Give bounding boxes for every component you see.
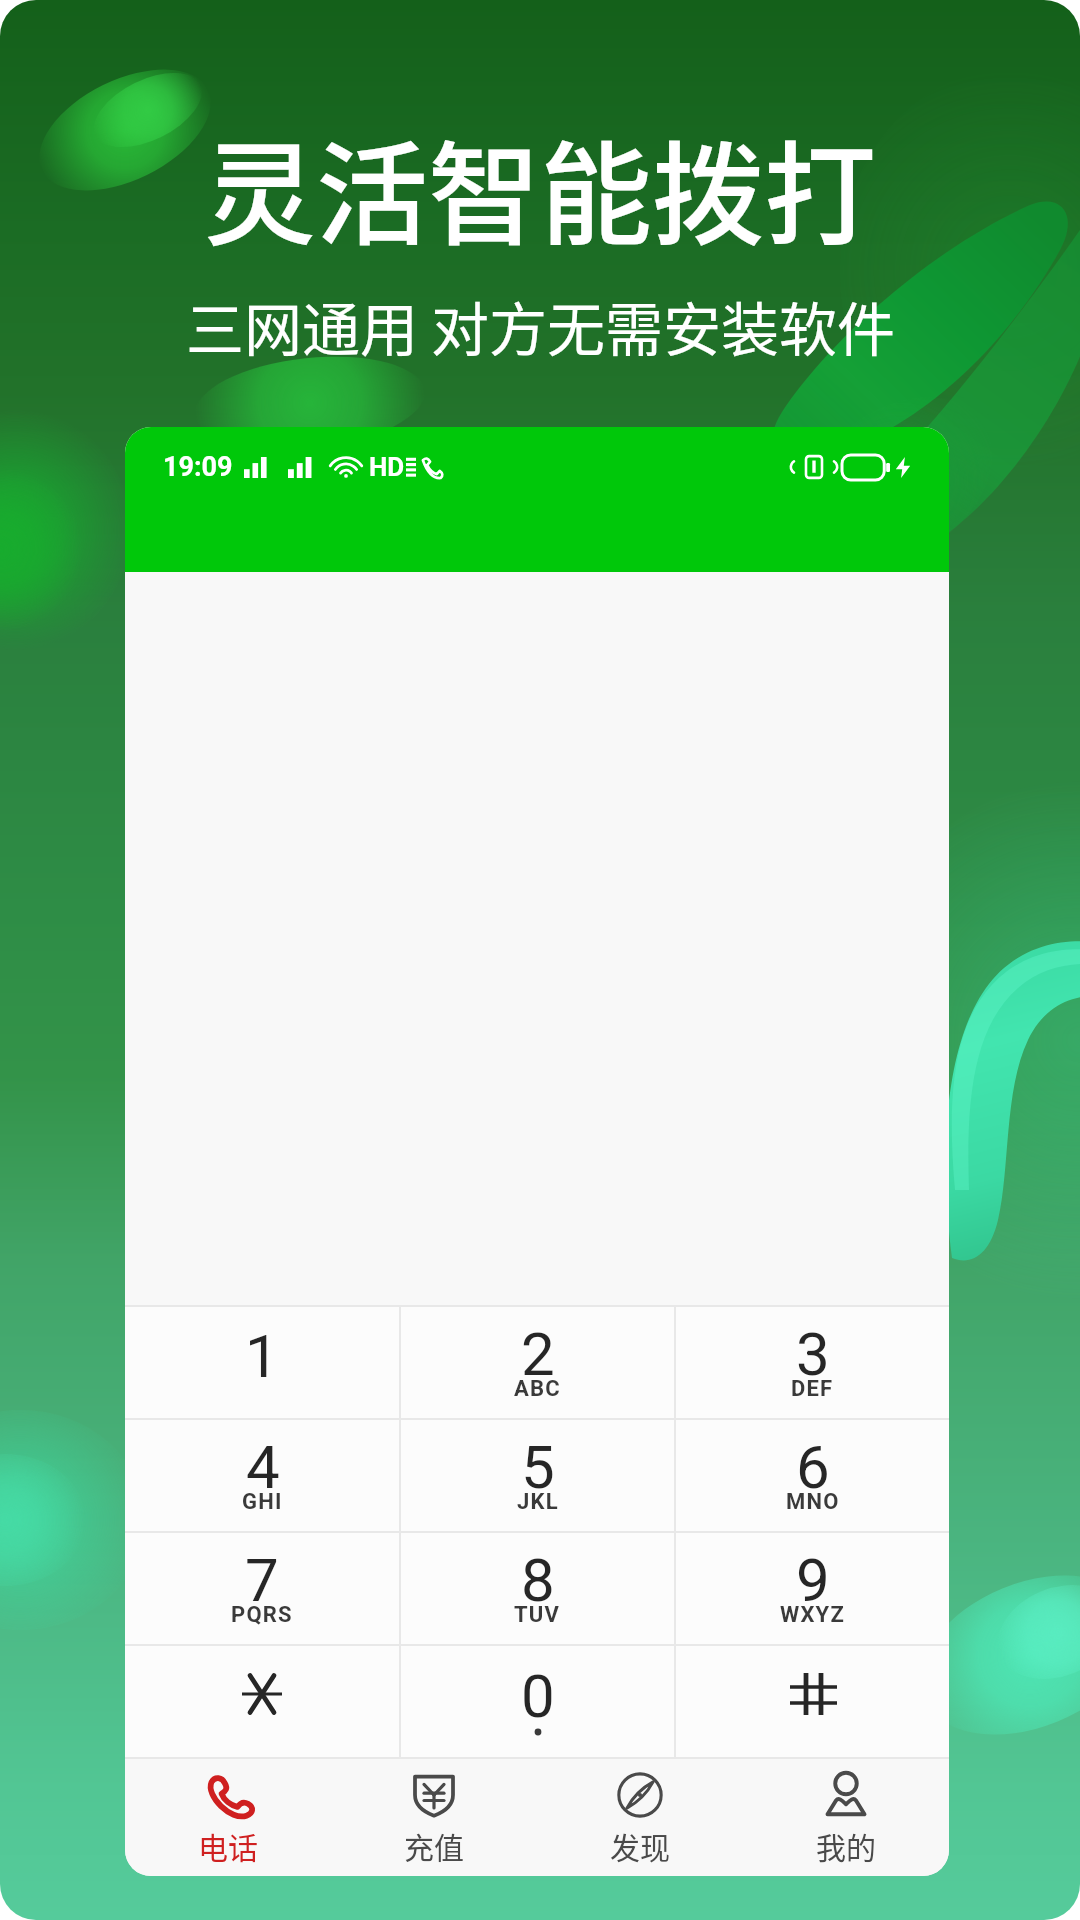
staticText: 灵活智能拨打 <box>204 106 876 268</box>
staticText: 19:09 <box>163 451 233 483</box>
staticText: 9 <box>796 1545 830 1615</box>
staticText: 8 <box>521 1545 555 1615</box>
staticText: ABC <box>514 1376 561 1402</box>
staticText: DEF <box>791 1376 834 1402</box>
button[interactable]: 5 <box>401 1420 674 1531</box>
staticText: 1 <box>245 1321 279 1391</box>
staticText: 发现 <box>610 1824 670 1867</box>
button[interactable]: 7 <box>125 1533 399 1644</box>
button[interactable]: 9 <box>676 1533 949 1644</box>
button[interactable] <box>676 1646 949 1757</box>
button[interactable]: 8 <box>401 1533 674 1644</box>
staticText: JKL <box>517 1489 559 1515</box>
staticText: TUV <box>514 1602 561 1628</box>
staticText: HD <box>369 452 405 482</box>
staticText: 3 <box>796 1319 830 1389</box>
button[interactable]: 电话 <box>125 1759 331 1876</box>
staticText: 电话 <box>198 1824 258 1867</box>
button[interactable]: 4 <box>125 1420 399 1531</box>
button[interactable]: 我的 <box>743 1759 949 1876</box>
staticText: MNO <box>786 1489 840 1515</box>
staticText: 5 <box>521 1432 555 1502</box>
button[interactable]: 0 <box>401 1646 674 1757</box>
button[interactable]: 3 <box>676 1307 949 1418</box>
staticText: 0 <box>521 1661 555 1731</box>
staticText: 充值 <box>404 1824 464 1867</box>
staticText: WXYZ <box>780 1602 845 1628</box>
staticText: 7 <box>245 1545 279 1615</box>
staticText: 三网通用 对方无需安装软件 <box>186 284 895 368</box>
staticText: 6 <box>796 1432 830 1502</box>
button[interactable] <box>125 1646 399 1757</box>
staticText: PQRS <box>231 1602 293 1628</box>
button[interactable]: 发现 <box>537 1759 743 1876</box>
staticText: GHI <box>242 1489 283 1515</box>
staticText: 4 <box>246 1432 280 1502</box>
button[interactable]: 2 <box>401 1307 674 1418</box>
button[interactable]: 充值 <box>331 1759 537 1876</box>
button[interactable]: 6 <box>676 1420 949 1531</box>
staticText: 我的 <box>816 1824 876 1867</box>
staticText: 2 <box>521 1319 555 1389</box>
button[interactable]: 1 <box>125 1307 399 1418</box>
